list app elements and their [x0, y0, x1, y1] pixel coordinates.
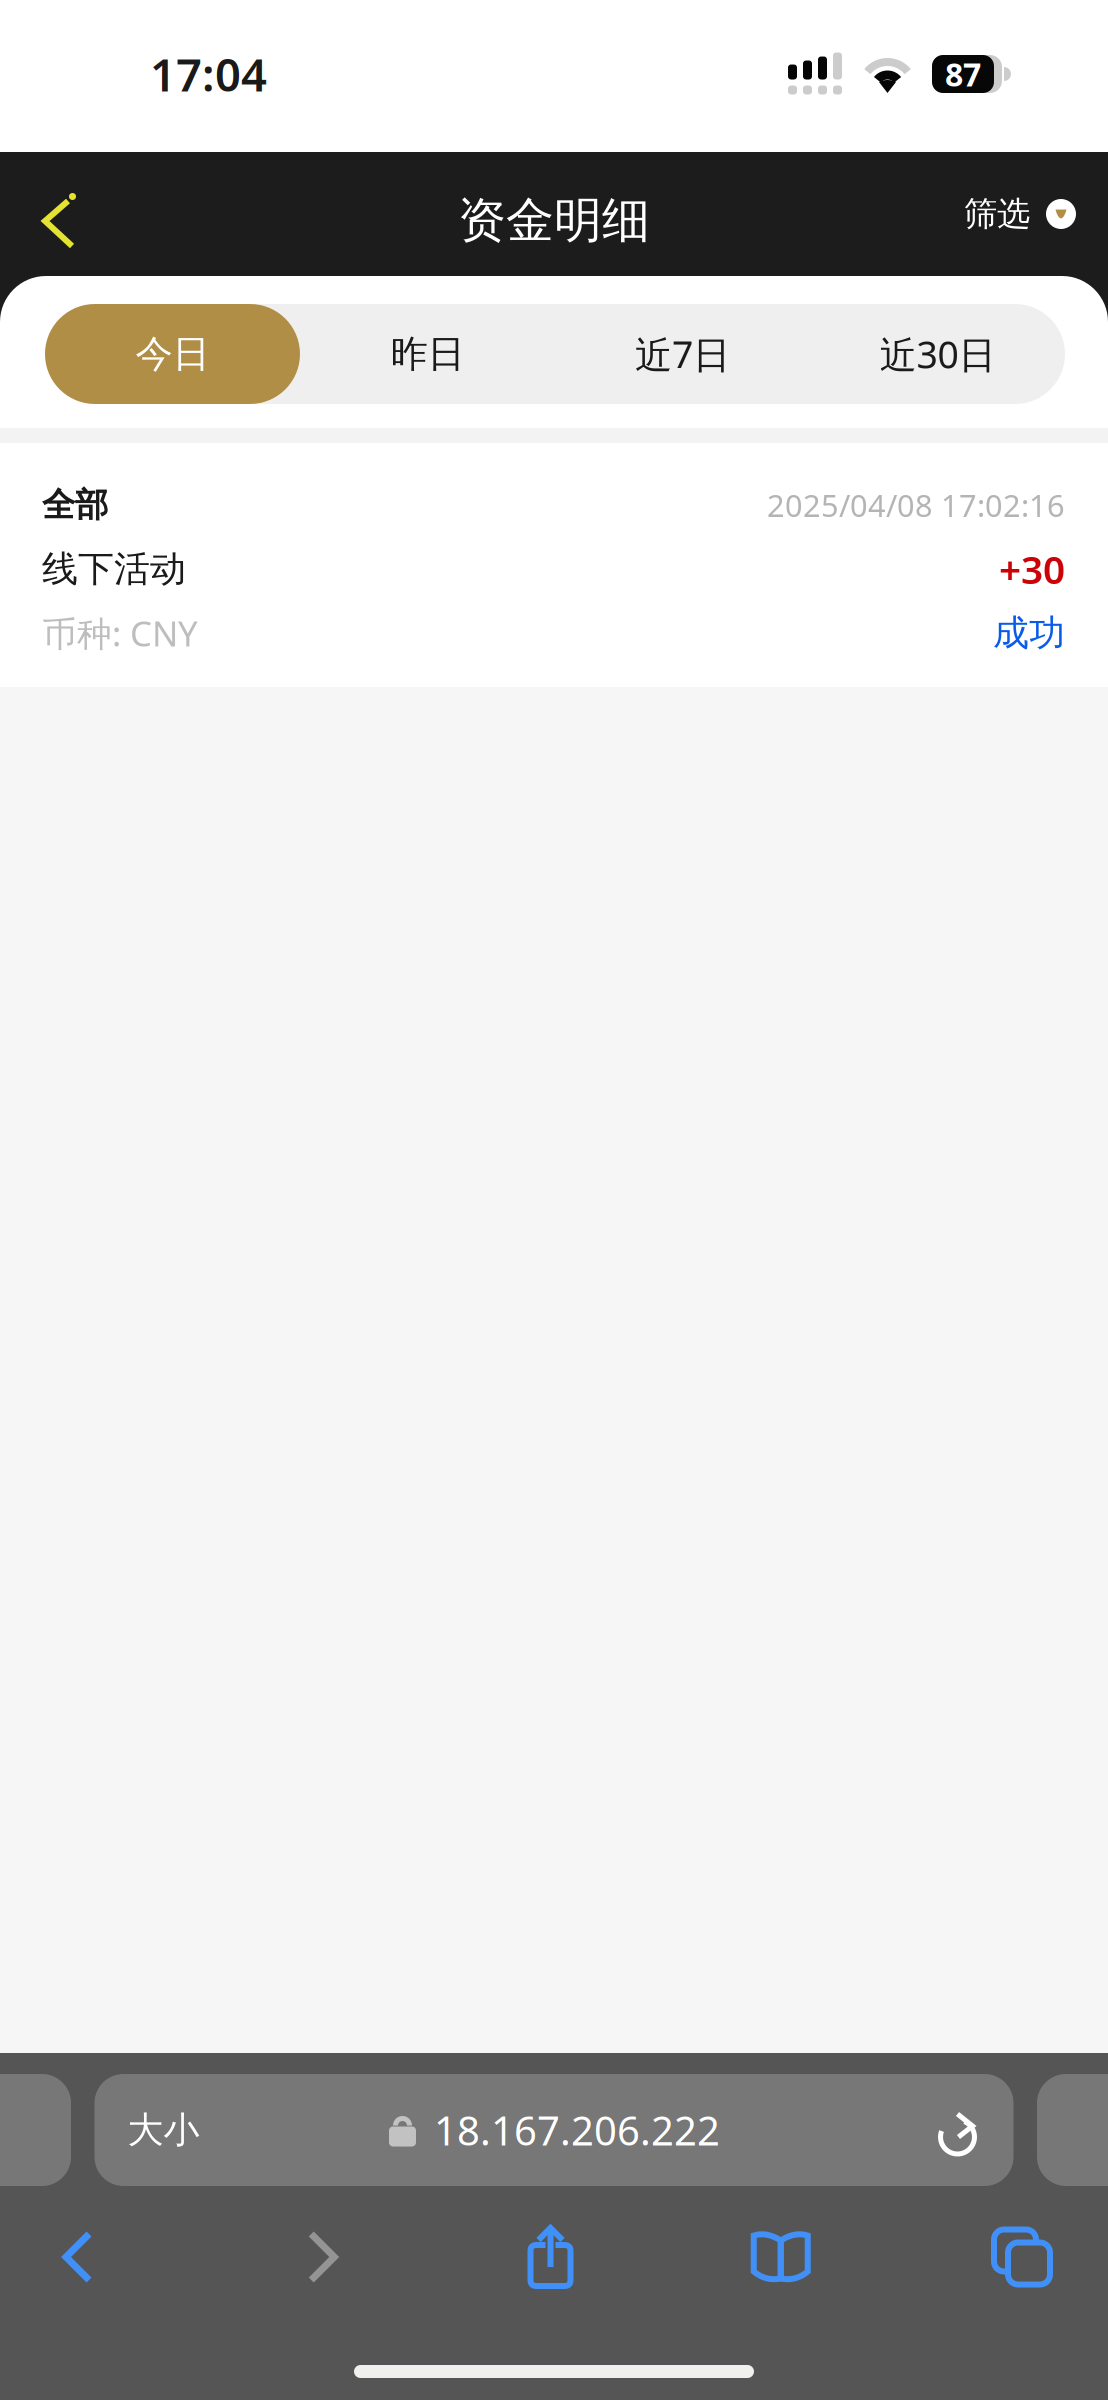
staticText: 线下活动	[42, 547, 186, 591]
button[interactable]: 大小	[94, 2074, 219, 2186]
staticText: 2025/04/08 17:02:16	[767, 485, 1065, 525]
staticText: 大小	[127, 2108, 199, 2152]
staticText: 87	[945, 53, 981, 95]
staticText: 资金明细	[458, 191, 650, 250]
staticText: 18.167.206.222	[434, 2103, 720, 2156]
button[interactable]: 近7日	[555, 304, 810, 404]
button[interactable]: Back	[0, 152, 118, 276]
button[interactable]: Share	[480, 2197, 620, 2317]
button[interactable]: 昨日	[300, 304, 555, 404]
button[interactable]: Back	[16, 2197, 165, 2317]
staticText: +30	[999, 543, 1065, 595]
staticText: 币种: CNY	[42, 610, 198, 656]
staticText: 全部	[42, 484, 108, 525]
button[interactable]: Bookmarks	[704, 2197, 858, 2317]
button[interactable]: 近30日	[810, 304, 1065, 404]
staticText: 昨日	[390, 331, 464, 377]
button[interactable]: 筛选	[924, 152, 1108, 276]
staticText: 17:04	[150, 44, 267, 104]
button[interactable]: Tabs	[941, 2197, 1092, 2317]
button[interactable]: 全部	[0, 443, 1108, 687]
button[interactable]: 今日	[45, 304, 300, 404]
button[interactable]: Reload	[918, 2074, 1013, 2186]
staticText: 近7日	[635, 329, 730, 379]
button[interactable]: Forward	[248, 2197, 397, 2317]
staticText: 筛选	[964, 193, 1030, 234]
staticText: 今日	[135, 331, 209, 377]
staticText: 近30日	[879, 329, 995, 379]
staticText: 成功	[993, 611, 1065, 655]
